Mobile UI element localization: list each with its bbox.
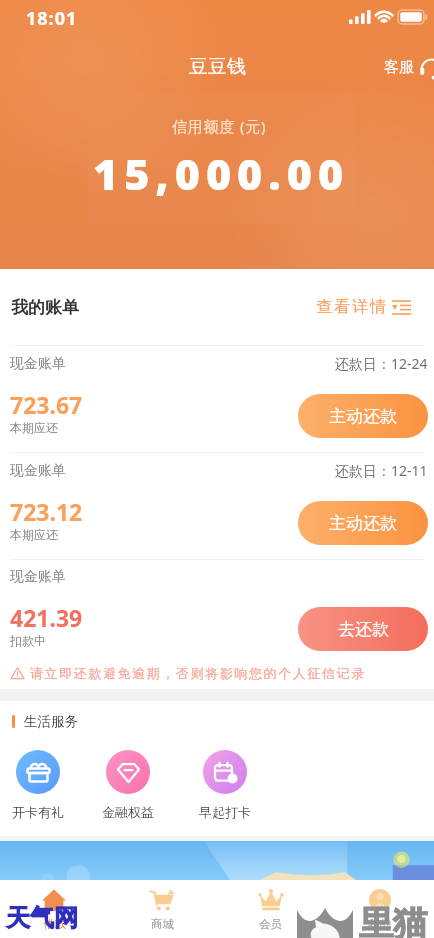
- staticText: 扣款中: [10, 633, 46, 648]
- staticText: 421.39: [10, 602, 83, 633]
- staticText: 主动还款: [329, 513, 397, 534]
- staticText: 生活服务: [24, 713, 78, 730]
- staticText: 商城: [151, 917, 174, 931]
- button[interactable]: 商城: [108, 880, 216, 938]
- staticText: 本期应还: [10, 420, 58, 435]
- staticText: 请立即还款避免逾期，否则将影响您的个人征信记录: [30, 665, 366, 681]
- staticText: 723.67: [10, 389, 83, 420]
- staticText: 现金账单: [10, 568, 66, 586]
- staticText: 开卡有礼: [12, 804, 64, 820]
- staticText: 15,000.00: [93, 144, 350, 203]
- button[interactable]: 主动还款: [298, 394, 428, 438]
- staticText: 早起打卡: [199, 804, 251, 820]
- staticText: 会员: [259, 917, 282, 931]
- staticText: 客服: [384, 58, 414, 77]
- staticText: 天气网: [6, 903, 78, 933]
- button[interactable]: 广告横幅: [0, 841, 434, 880]
- staticText: 查看详情: [315, 297, 387, 317]
- staticText: 主动还款: [329, 406, 397, 427]
- button[interactable]: 早起打卡: [180, 750, 270, 820]
- button[interactable]: 主动还款: [298, 501, 428, 545]
- button[interactable]: 去还款: [298, 607, 428, 651]
- staticText: 18:01: [26, 6, 78, 31]
- button[interactable]: 我的: [325, 880, 434, 938]
- staticText: 里猫: [359, 902, 427, 938]
- staticText: 借款: [43, 917, 66, 931]
- staticText: 本期应还: [10, 527, 58, 542]
- staticText: 我的: [368, 917, 391, 931]
- button[interactable]: 借款: [0, 880, 108, 938]
- staticText: 我的账单: [11, 297, 79, 318]
- button[interactable]: 开卡有礼: [0, 750, 76, 820]
- staticText: 还款日：12-24: [335, 354, 428, 373]
- button[interactable]: 会员: [216, 880, 325, 938]
- staticText: 信用额度 (元): [172, 116, 267, 136]
- button[interactable]: 查看详情: [313, 291, 413, 323]
- staticText: 豆豆钱: [189, 55, 246, 79]
- staticText: 还款日：12-11: [335, 461, 428, 480]
- staticText: 金融权益: [102, 804, 154, 820]
- button[interactable]: 金融权益: [76, 750, 180, 820]
- staticText: 723.12: [10, 496, 83, 527]
- staticText: 去还款: [338, 619, 389, 640]
- staticText: 现金账单: [10, 462, 66, 480]
- button[interactable]: 客服: [380, 49, 434, 86]
- staticText: 现金账单: [10, 355, 66, 373]
